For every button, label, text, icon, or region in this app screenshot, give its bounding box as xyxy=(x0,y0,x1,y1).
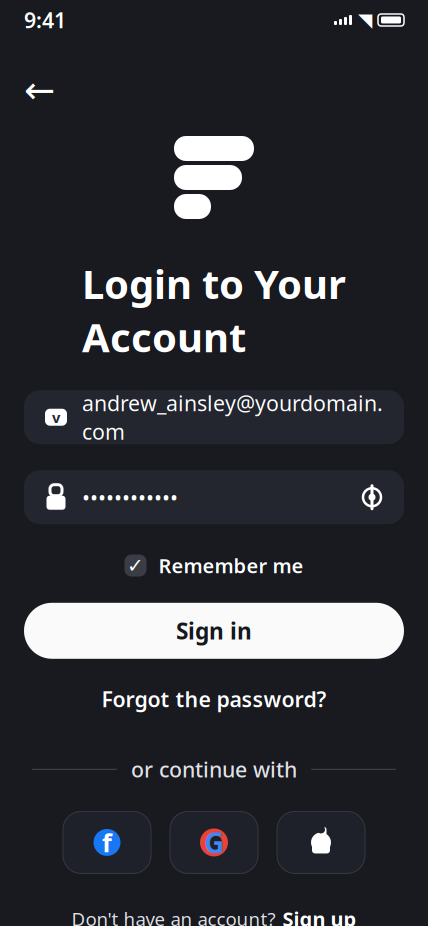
button[interactable]: Back xyxy=(24,68,68,112)
button[interactable]: Forgot the password? xyxy=(91,677,336,721)
button[interactable]: Continue with Apple xyxy=(277,811,365,873)
staticText: ← xyxy=(24,69,55,111)
button[interactable]: Continue with Google xyxy=(170,811,258,873)
staticText: Don't have an account? xyxy=(71,906,275,926)
button[interactable]: Sign in xyxy=(24,603,404,659)
staticText: Forgot the password? xyxy=(101,685,326,713)
button[interactable]: ✓ xyxy=(120,546,307,585)
staticText: andrew_ainsley@yourdomain.com xyxy=(82,389,383,446)
staticText: Login to Your Account xyxy=(82,257,346,363)
staticText: v xyxy=(52,407,60,427)
staticText: f xyxy=(102,826,112,859)
staticText: •••••••••••• xyxy=(82,483,178,511)
staticText: 9:41 xyxy=(24,6,66,34)
staticText: ✓ xyxy=(127,554,144,577)
staticText: Sign in xyxy=(176,616,252,646)
staticText: G xyxy=(204,824,224,861)
staticText: Sign up xyxy=(282,905,356,926)
button[interactable]: Sign up xyxy=(282,905,356,926)
staticText: or continue with xyxy=(131,755,297,783)
staticText: ◥ xyxy=(358,9,372,31)
button[interactable]: Show password xyxy=(360,485,384,509)
staticText: Remember me xyxy=(158,552,303,579)
button[interactable]: Continue with Facebook xyxy=(63,811,151,873)
